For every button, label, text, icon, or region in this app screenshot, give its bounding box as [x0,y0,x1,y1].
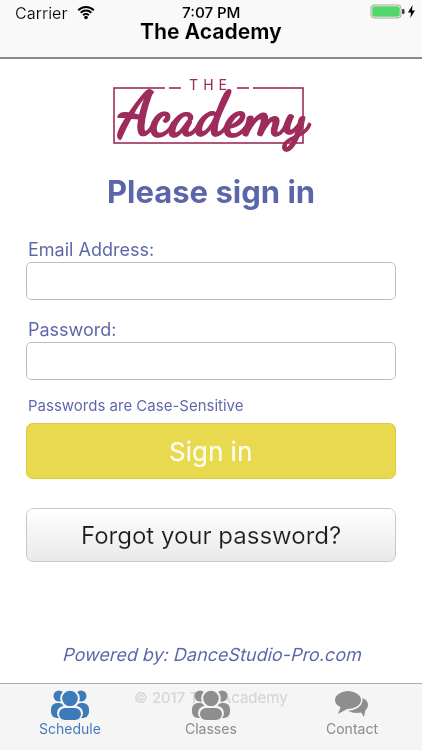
staticText: Carrier [15,3,68,22]
staticText: THE [189,76,233,93]
staticText: Sign in [169,436,253,467]
button[interactable] [26,342,396,380]
staticText: The Academy [140,19,282,44]
staticText: Password: [28,319,117,341]
button[interactable] [26,262,396,300]
staticText: Academy [119,79,308,151]
staticText: 7:07 PM [182,3,241,21]
staticText: © 2017 The Academy [134,688,288,706]
staticText: Please sign in [107,173,316,211]
staticText: Contact [326,720,378,737]
staticText: Schedule [39,720,101,737]
staticText: Academy [120,78,309,150]
staticText: Email Address: [28,239,155,261]
staticText: Academy [119,78,308,150]
button[interactable]: Schedule [0,683,140,750]
button[interactable]: Forgot your password? [26,508,396,562]
staticText: Passwords are Case-Sensitive [28,396,244,414]
button[interactable]: Powered by: DanceStudio-Pro.com [62,644,361,666]
staticText: Classes [185,720,237,737]
button[interactable]: Classes [140,683,281,750]
button[interactable]: Contact [281,683,422,750]
staticText: Forgot your password? [81,521,342,550]
button[interactable]: Sign in [26,423,396,479]
